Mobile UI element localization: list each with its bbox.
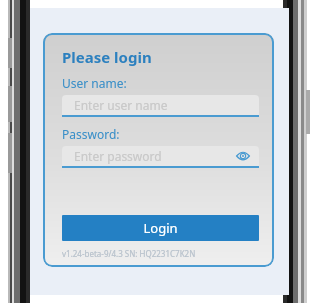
staticText: Enter user name bbox=[74, 97, 251, 113]
staticText: Please login bbox=[62, 47, 152, 67]
staticText: Login bbox=[143, 219, 178, 237]
button[interactable]: Enter user name bbox=[62, 95, 259, 117]
staticText: User name: bbox=[62, 75, 127, 91]
staticText: Password: bbox=[62, 126, 120, 142]
staticText: v1.24-beta-9/4.3 SN: HQ2231C7K2N bbox=[62, 248, 196, 259]
button[interactable]: Enter password bbox=[62, 146, 259, 168]
button[interactable]: Show password bbox=[235, 148, 251, 164]
button[interactable]: Login bbox=[62, 215, 259, 241]
staticText: Enter password bbox=[74, 148, 235, 164]
